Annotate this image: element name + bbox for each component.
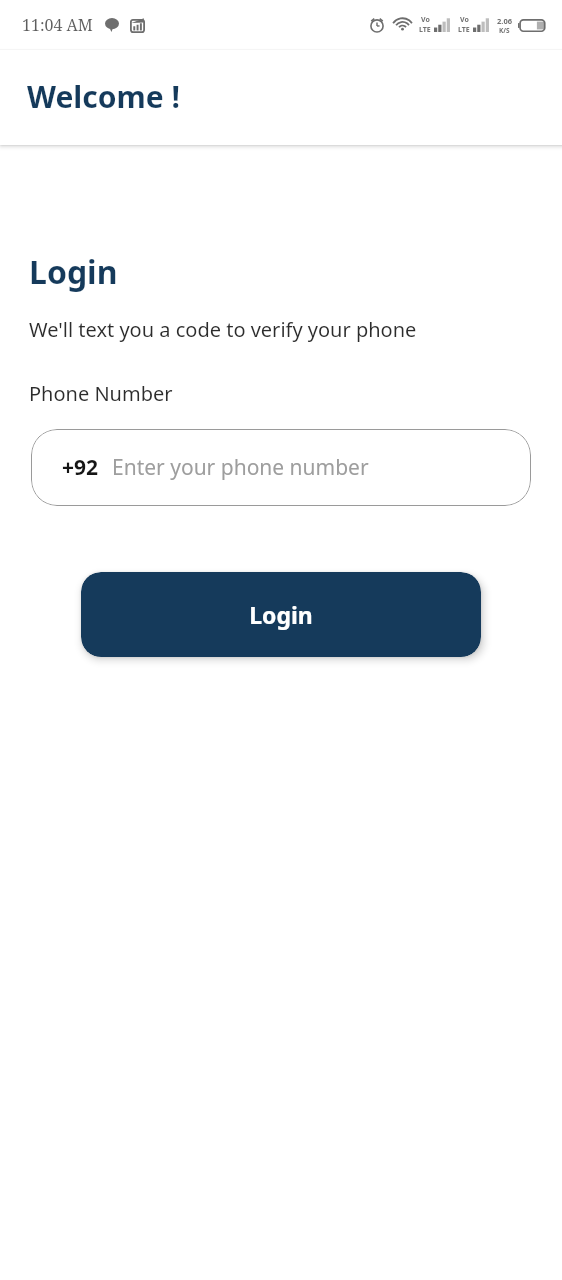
button[interactable]: Login bbox=[81, 572, 481, 657]
staticText: Vo bbox=[460, 15, 469, 25]
staticText: 2.06 bbox=[497, 16, 512, 26]
staticText: LTE bbox=[458, 25, 470, 35]
staticText: LTE bbox=[419, 25, 431, 35]
button[interactable]: +92 bbox=[31, 429, 531, 506]
staticText: K/S bbox=[499, 26, 510, 35]
staticText: +92 bbox=[62, 453, 99, 482]
staticText: Welcome ! bbox=[27, 76, 180, 117]
staticText: Vo bbox=[421, 15, 430, 25]
staticText: Enter your phone number bbox=[112, 453, 369, 482]
staticText: Login bbox=[249, 599, 313, 630]
staticText: Login bbox=[29, 250, 118, 294]
staticText: 11:04 AM bbox=[22, 14, 93, 36]
staticText: We'll text you a code to verify your pho… bbox=[29, 316, 417, 343]
staticText: Phone Number bbox=[29, 380, 173, 407]
